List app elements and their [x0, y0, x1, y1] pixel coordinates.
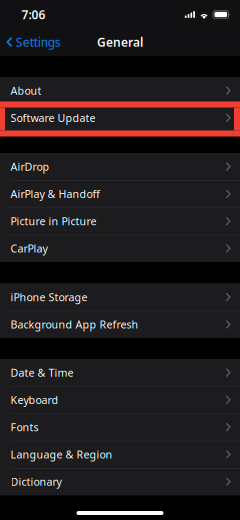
button[interactable]: AirPlay & Handoff [0, 180, 240, 207]
button[interactable]: About [0, 77, 240, 104]
button[interactable]: CarPlay [0, 235, 240, 262]
staticText: About [10, 83, 41, 98]
staticText: Date & Time [10, 365, 73, 380]
button[interactable]: Language & Region [0, 441, 240, 468]
button[interactable]: Software Update [0, 104, 240, 131]
button[interactable]: Picture in Picture [0, 207, 240, 235]
staticText: AirPlay & Handoff [10, 187, 99, 201]
staticText: General [97, 34, 143, 50]
staticText: Background App Refresh [10, 317, 138, 331]
button[interactable]: Dictionary [0, 468, 240, 495]
staticText: AirDrop [10, 159, 49, 174]
button[interactable]: Date & Time [0, 359, 240, 386]
staticText: iPhone Storage [10, 290, 87, 304]
staticText: 7:06 [21, 6, 45, 22]
staticText: Settings [16, 34, 61, 50]
staticText: Language & Region [10, 447, 112, 461]
button[interactable]: Keyboard [0, 386, 240, 413]
staticText: Software Update [10, 111, 95, 125]
staticText: Keyboard [10, 393, 58, 407]
button[interactable]: Background App Refresh [0, 311, 240, 338]
button[interactable]: Fonts [0, 413, 240, 441]
staticText: Dictionary [10, 474, 61, 489]
button[interactable]: Settings [0, 29, 67, 55]
button[interactable]: AirDrop [0, 153, 240, 180]
button[interactable]: iPhone Storage [0, 283, 240, 311]
staticText: CarPlay [10, 241, 47, 255]
staticText: Picture in Picture [10, 214, 96, 228]
staticText: Fonts [10, 420, 38, 434]
